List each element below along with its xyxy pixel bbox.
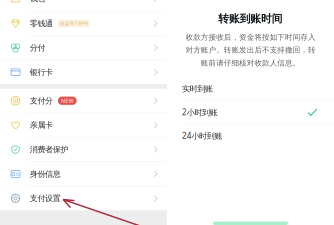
button[interactable]	[213, 221, 288, 225]
staticText: 身份信息	[30, 169, 61, 179]
button[interactable]: 零钱通	[0, 11, 167, 35]
button[interactable]: 支付设置	[0, 186, 167, 210]
staticText: 收益率1.84%	[60, 20, 88, 27]
staticText: 钱包	[30, 0, 45, 4]
staticText: 转账到账时间	[218, 12, 283, 25]
staticText: 分付	[30, 43, 45, 53]
button[interactable]: 银行卡	[0, 60, 167, 84]
staticText: NEW	[61, 97, 73, 104]
staticText: 收款方接收后，资金将按如下时间存入对方账户。转账发出后不支持撤回，转账前请仔细核…	[185, 32, 316, 68]
button[interactable]: 钱包	[0, 0, 167, 11]
staticText: 支付设置	[30, 193, 61, 203]
button[interactable]: 身份信息	[0, 162, 167, 186]
button[interactable]: 亲属卡	[0, 113, 167, 137]
button[interactable]: 支付分	[0, 89, 167, 113]
staticText: 实时到账	[182, 84, 213, 94]
staticText: 亲属卡	[30, 120, 53, 130]
staticText: 银行卡	[30, 67, 53, 77]
button[interactable]: 24小时到账	[167, 124, 334, 147]
button[interactable]: 分付	[0, 36, 167, 60]
staticText: 2小时到账	[182, 107, 218, 118]
staticText: 消费者保护	[30, 144, 68, 155]
staticText: 零钱通	[30, 18, 53, 29]
staticText: 24小时到账	[182, 130, 222, 141]
staticText: 支付分	[30, 96, 53, 106]
button[interactable]: 实时到账	[167, 77, 334, 100]
button[interactable]: 2小时到账	[167, 101, 334, 124]
button[interactable]: 消费者保护	[0, 138, 167, 161]
